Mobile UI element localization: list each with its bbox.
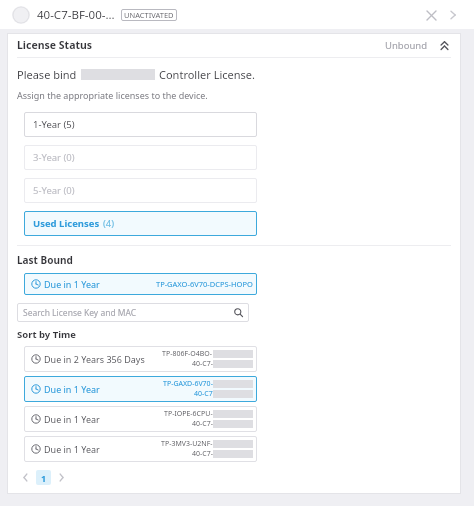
- staticText: UNACTIVATED: [124, 10, 174, 20]
- staticText: 1-Year (5): [33, 118, 75, 131]
- button[interactable]: Close: [420, 4, 442, 26]
- staticText: 5-Year (0): [33, 184, 75, 197]
- staticText: 40-C7-BF-00-...: [37, 7, 115, 23]
- staticText: Last Bound: [17, 253, 73, 267]
- staticText: Due in 1 Year: [44, 278, 100, 290]
- staticText: TP-3MV3-U2NF-: [161, 439, 213, 449]
- staticText: Sort by Time: [17, 328, 76, 341]
- button[interactable]: Collapse: [437, 38, 451, 52]
- staticText: 3-Year (0): [33, 151, 75, 164]
- staticText: Controller License.: [159, 67, 255, 82]
- staticText: TP-GAXO-6V70-DCPS-HOPO: [156, 279, 253, 289]
- button[interactable]: Due in 1 Year: [24, 273, 257, 295]
- button[interactable]: Next: [442, 4, 464, 26]
- button[interactable]: Due in 2 Years 356 Days: [24, 346, 257, 372]
- staticText: Used Licenses: [33, 217, 100, 230]
- staticText: 40-C7-: [192, 419, 213, 429]
- staticText: Search License Key and MAC: [23, 307, 137, 319]
- staticText: Assign the appropriate licenses to the d…: [17, 89, 208, 101]
- staticText: 1: [41, 472, 47, 484]
- staticText: 40-C7-: [192, 449, 213, 459]
- button[interactable]: 1: [36, 470, 51, 485]
- button[interactable]: 5-Year (0): [24, 178, 257, 203]
- staticText: License Status: [17, 38, 93, 52]
- button[interactable]: Search License Key and MAC: [17, 303, 249, 322]
- button[interactable]: 3-Year (0): [24, 145, 257, 170]
- button[interactable]: Next page: [53, 469, 70, 486]
- button[interactable]: Previous page: [17, 469, 34, 486]
- staticText: Due in 1 Year: [44, 443, 100, 455]
- button[interactable]: Used Licenses: [24, 211, 257, 236]
- staticText: Due in 1 Year: [44, 383, 100, 395]
- staticText: 40-C7-: [192, 359, 213, 369]
- staticText: TP-GAXD-6V70-: [163, 379, 213, 389]
- button[interactable]: Due in 1 Year: [24, 376, 257, 402]
- staticText: (4): [103, 217, 115, 230]
- staticText: Please bind: [17, 67, 77, 82]
- staticText: TP-IOPE-6CPU-: [164, 409, 213, 419]
- staticText: TP-806F-O4BO-: [162, 349, 213, 359]
- staticText: 40-C7: [194, 389, 213, 399]
- staticText: Unbound: [385, 39, 427, 52]
- staticText: Due in 2 Years 356 Days: [44, 353, 145, 365]
- button[interactable]: Due in 1 Year: [24, 406, 257, 432]
- button[interactable]: 1-Year (5): [24, 112, 257, 137]
- button[interactable]: Due in 1 Year: [24, 436, 257, 462]
- staticText: Due in 1 Year: [44, 413, 100, 425]
